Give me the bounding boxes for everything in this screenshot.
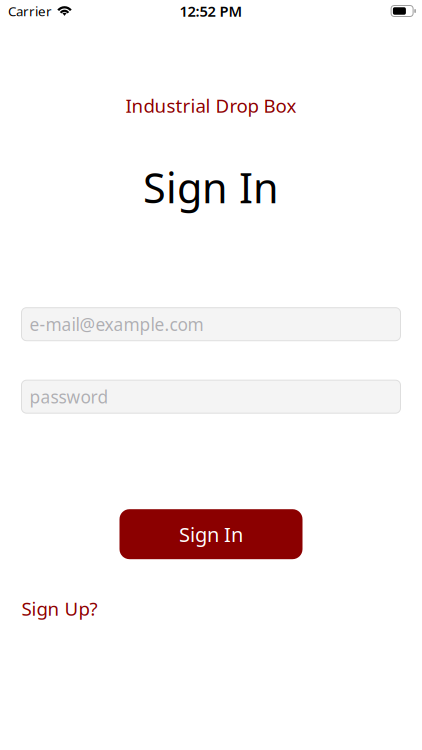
button[interactable]: e-mail@example.com: [21, 308, 400, 341]
staticText: 12:52 PM: [179, 1, 242, 21]
button[interactable]: Sign In: [119, 509, 302, 559]
button[interactable]: Sign Up?: [21, 596, 97, 621]
staticText: password: [29, 385, 108, 408]
button[interactable]: password: [21, 380, 400, 413]
staticText: Sign Up?: [21, 596, 97, 621]
staticText: Carrier: [8, 2, 52, 20]
staticText: Sign In: [179, 521, 243, 547]
staticText: Sign In: [143, 160, 279, 215]
staticText: Industrial Drop Box: [125, 93, 296, 118]
staticText: e-mail@example.com: [29, 313, 203, 336]
